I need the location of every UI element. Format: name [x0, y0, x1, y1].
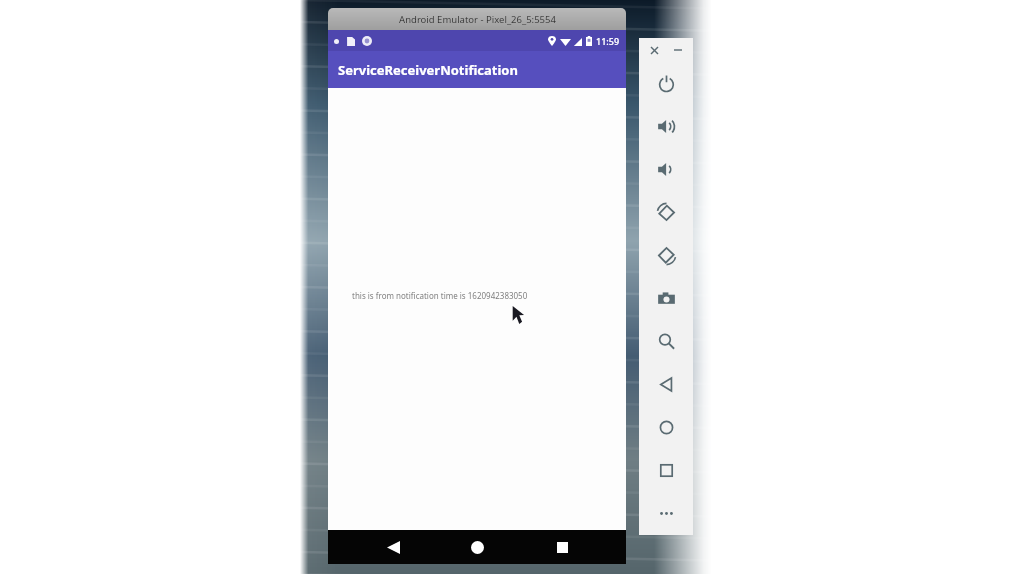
button[interactable]: Home [457, 530, 497, 564]
staticText: Android Emulator - Pixel_26_5:5554 [399, 13, 556, 26]
button[interactable]: Zoom [639, 320, 693, 363]
button[interactable]: Close [645, 41, 663, 59]
button[interactable]: Volume down [639, 148, 693, 191]
button[interactable]: Recent apps [542, 530, 582, 564]
button[interactable]: Minimize [669, 41, 687, 59]
staticText: this is from notification time is 162094… [352, 290, 528, 301]
button[interactable]: Back [639, 363, 693, 406]
button[interactable]: More [639, 492, 693, 535]
button[interactable]: Back [373, 530, 413, 564]
button[interactable]: Take screenshot [639, 277, 693, 320]
button[interactable]: Overview [639, 449, 693, 492]
staticText: ServiceReceiverNotification [338, 61, 518, 79]
staticText: 11:59 [596, 35, 620, 47]
button[interactable]: Power [639, 62, 693, 105]
button[interactable]: Home [639, 406, 693, 449]
button[interactable]: Rotate left [639, 191, 693, 234]
button[interactable]: ServiceReceiverNotification [328, 51, 626, 88]
button[interactable]: Rotate right [639, 234, 693, 277]
button[interactable]: Volume up [639, 105, 693, 148]
